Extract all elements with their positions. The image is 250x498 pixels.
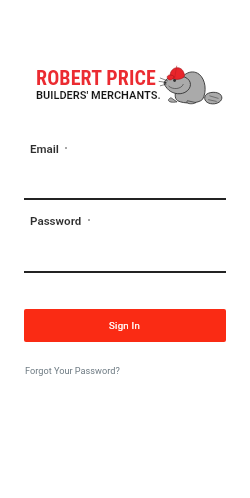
- staticText: ROBERT PRICE: [36, 66, 156, 89]
- button[interactable]: Sign In: [24, 309, 226, 342]
- staticText: Email: [30, 142, 59, 156]
- staticText: BUILDERS' MERCHANTS.: [36, 89, 161, 102]
- staticText: Password: [30, 214, 82, 228]
- staticText: Forgot Your Password?: [25, 365, 120, 376]
- button[interactable]: Forgot Your Password?: [25, 365, 120, 376]
- staticText: Sign In: [109, 320, 141, 331]
